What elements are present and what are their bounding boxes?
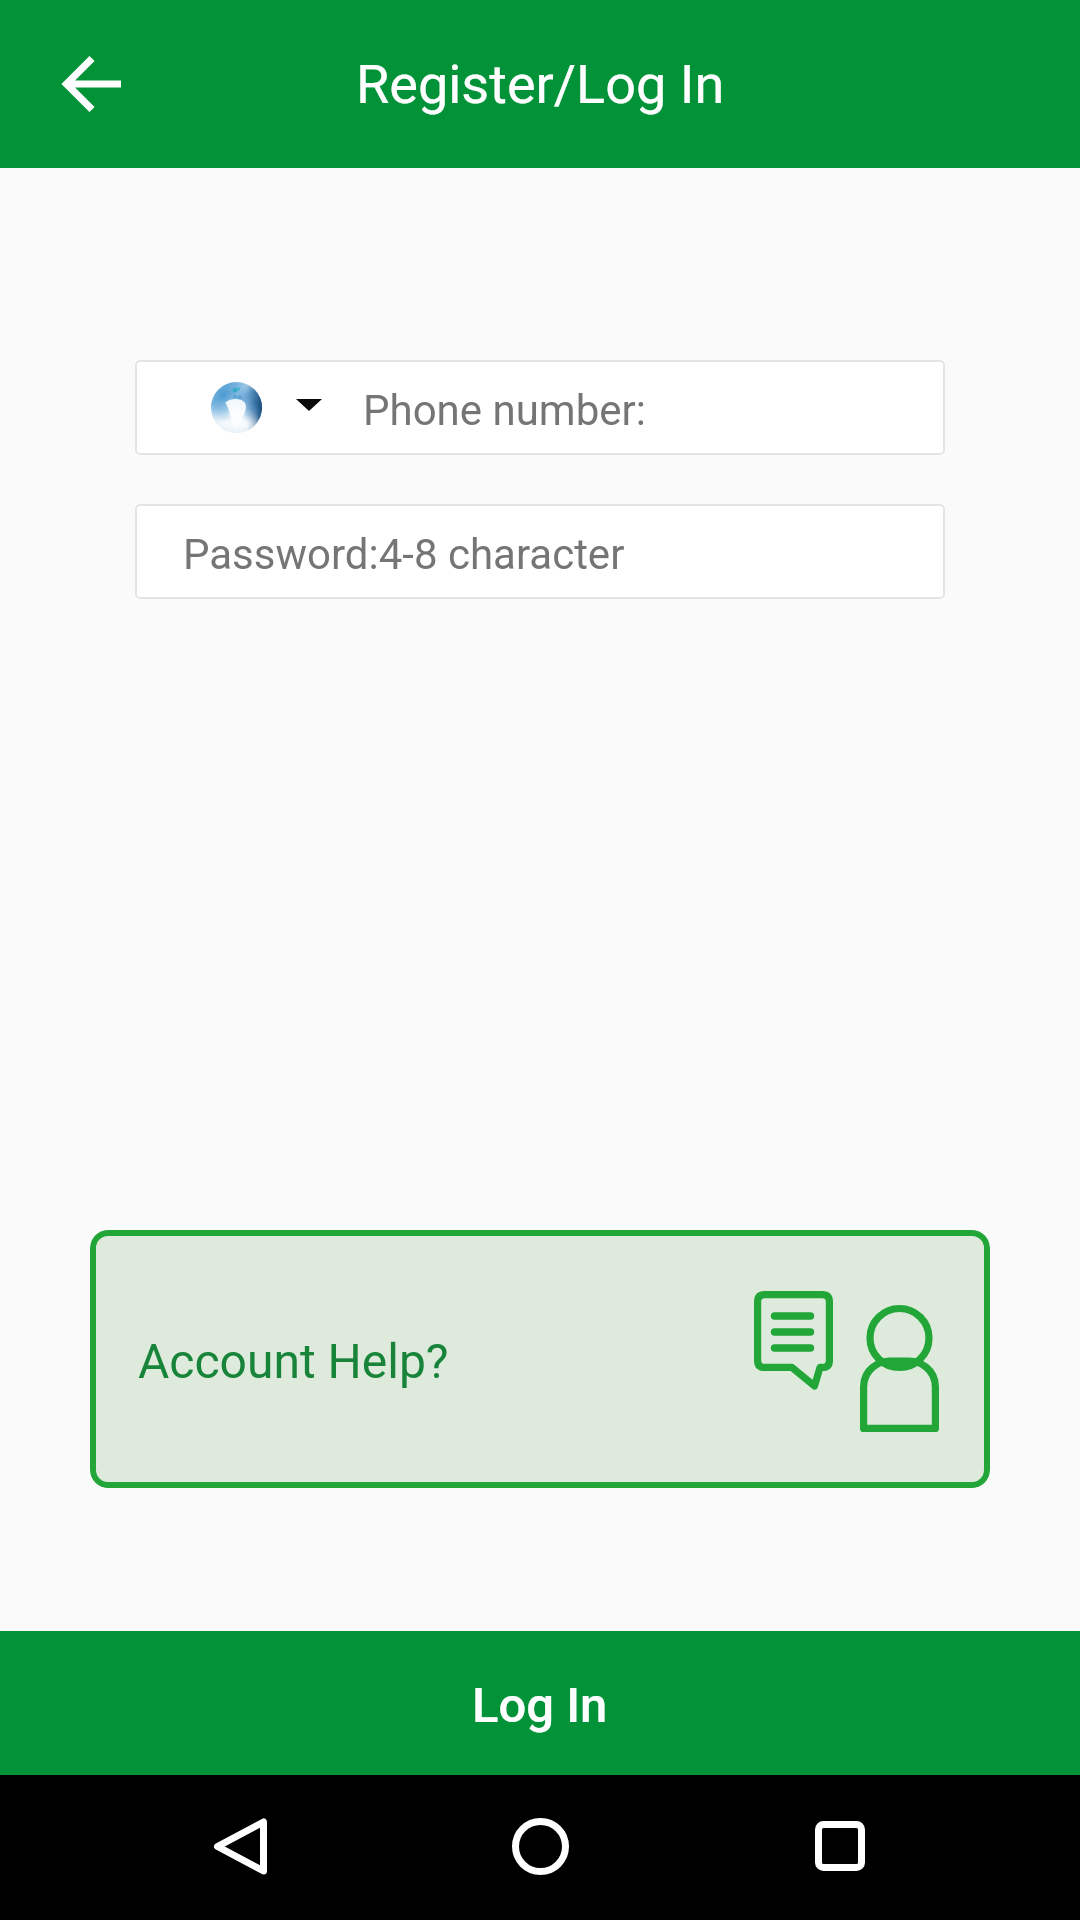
staticText: Password:4-8 character xyxy=(183,530,625,579)
staticText: Phone number: xyxy=(363,386,646,435)
button[interactable]: Log In xyxy=(0,1631,1080,1775)
button[interactable]: Back xyxy=(192,1798,288,1894)
button[interactable]: Account Help? xyxy=(90,1230,990,1488)
button[interactable]: Recent apps xyxy=(792,1798,888,1894)
button[interactable]: Password:4-8 character xyxy=(135,504,945,599)
staticText: Account Help? xyxy=(138,1333,449,1389)
button[interactable]: Phone number: xyxy=(135,360,945,455)
staticText: Register/Log In xyxy=(356,53,725,116)
button[interactable]: Navigate up xyxy=(45,36,141,132)
button[interactable]: Home xyxy=(492,1798,588,1894)
staticText: Log In xyxy=(472,1677,608,1734)
